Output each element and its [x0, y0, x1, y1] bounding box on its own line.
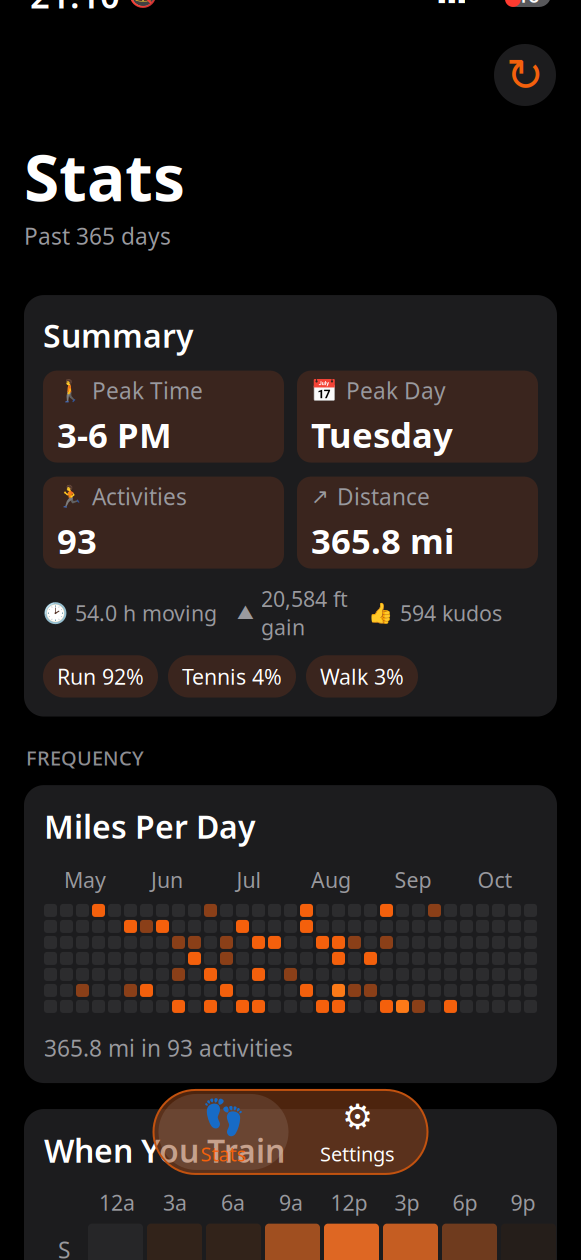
staticText: Run 92%	[57, 662, 144, 690]
staticText: 6a	[221, 1188, 245, 1217]
staticText: 12p	[330, 1188, 367, 1217]
staticText: Jun	[151, 866, 183, 894]
staticText: 🔕	[128, 0, 158, 9]
staticText: 20,584 ft gain	[261, 585, 348, 641]
staticText: Oct	[477, 866, 512, 894]
staticText: Past 365 days	[24, 221, 171, 251]
staticText: 12a	[99, 1188, 135, 1217]
staticText: Tennis 4%	[182, 662, 282, 690]
staticText: 54.0 h moving	[75, 599, 217, 627]
staticText: 3-6 PM	[57, 412, 172, 458]
button[interactable]: Tennis 4%	[168, 655, 296, 697]
staticText: 🏃	[57, 484, 84, 509]
staticText: Sep	[394, 866, 431, 894]
staticText: 365.8 mi	[311, 518, 454, 564]
staticText: 3p	[394, 1188, 419, 1217]
staticText: May	[64, 866, 106, 894]
staticText: When You Train	[44, 1129, 285, 1171]
staticText: 594 kudos	[400, 599, 502, 627]
staticText: Distance	[337, 481, 430, 512]
staticText: 👣	[202, 1097, 245, 1136]
staticText: 21:10	[30, 0, 120, 18]
staticText: 🚶	[57, 378, 84, 403]
staticText: 3a	[163, 1188, 187, 1217]
button[interactable]: Walk 3%	[306, 655, 418, 697]
staticText: Miles Per Day	[44, 805, 256, 848]
staticText: 📅	[311, 378, 338, 403]
button[interactable]: Run 92%	[43, 655, 158, 697]
staticText: S	[58, 1235, 70, 1260]
button[interactable]: Refresh	[494, 44, 556, 106]
staticText: ↗	[311, 484, 329, 509]
staticText: Walk 3%	[320, 662, 404, 690]
staticText: Settings	[320, 1140, 395, 1167]
staticText: ⛰	[237, 603, 254, 623]
staticText: ↻	[506, 49, 544, 101]
staticText: 9a	[279, 1188, 303, 1217]
staticText: Peak Day	[346, 375, 446, 406]
button[interactable]: 👣	[158, 1094, 288, 1170]
staticText: 93	[57, 518, 97, 564]
staticText: 👍	[368, 601, 393, 624]
staticText: Summary	[43, 314, 194, 357]
staticText: Stats	[200, 1140, 246, 1167]
staticText: Aug	[311, 866, 351, 894]
staticText: 🕑	[43, 601, 68, 624]
staticText: Jul	[236, 866, 261, 894]
staticText: 16	[517, 0, 539, 8]
staticText: ▮▮▮	[437, 0, 467, 5]
staticText: FREQUENCY	[26, 745, 144, 771]
staticText: Stats	[24, 134, 185, 219]
staticText: ⚙	[342, 1097, 373, 1136]
staticText: 9p	[510, 1188, 535, 1217]
staticText: 365.8 mi in 93 activities	[44, 1033, 293, 1063]
staticText: 6p	[452, 1188, 477, 1217]
staticText: Peak Time	[92, 375, 203, 406]
staticText: Activities	[92, 481, 187, 512]
button[interactable]: ⚙	[292, 1094, 422, 1170]
staticText: Tuesday	[311, 412, 453, 458]
